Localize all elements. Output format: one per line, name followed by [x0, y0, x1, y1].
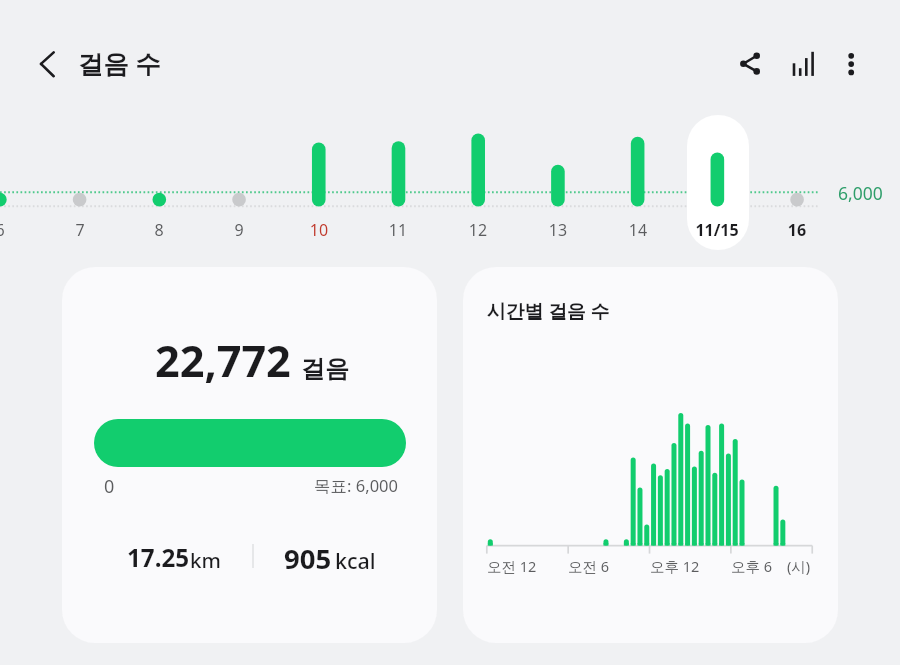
- staticText: 11/15: [617, 219, 817, 241]
- staticText: kcal: [335, 546, 376, 575]
- staticText: 13: [458, 219, 658, 241]
- staticText: 0: [104, 474, 115, 499]
- staticText: 9: [139, 219, 339, 241]
- staticText: 12: [378, 219, 578, 241]
- staticText: 시간별 걸음 수: [487, 298, 610, 324]
- button[interactable]: Share: [730, 45, 770, 85]
- staticText: 7: [0, 219, 180, 241]
- staticText: 오후 12: [650, 556, 700, 576]
- staticText: (시): [787, 556, 811, 576]
- button[interactable]: [62, 267, 437, 643]
- staticText: 걸음: [301, 354, 349, 384]
- staticText: 8: [59, 219, 259, 241]
- button[interactable]: Trends chart: [783, 45, 823, 85]
- staticText: 10: [219, 219, 419, 241]
- button[interactable]: More options: [831, 45, 871, 85]
- staticText: 오후 6: [731, 556, 773, 576]
- staticText: 17.25: [127, 541, 190, 574]
- staticText: 22,772: [155, 331, 291, 390]
- button[interactable]: Back: [27, 45, 67, 85]
- staticText: 목표: 6,000: [246, 474, 398, 497]
- staticText: 14: [538, 219, 738, 241]
- staticText: 오전 6: [568, 556, 610, 576]
- staticText: 905: [284, 540, 332, 577]
- staticText: 11: [298, 219, 498, 241]
- staticText: 걸음 수: [78, 46, 161, 81]
- staticText: 6,000: [838, 181, 883, 205]
- staticText: 오전 12: [487, 556, 537, 576]
- staticText: 16: [697, 219, 897, 241]
- button[interactable]: [687, 115, 749, 250]
- button[interactable]: [463, 267, 838, 643]
- staticText: 6: [0, 219, 100, 241]
- staticText: km: [190, 546, 221, 574]
